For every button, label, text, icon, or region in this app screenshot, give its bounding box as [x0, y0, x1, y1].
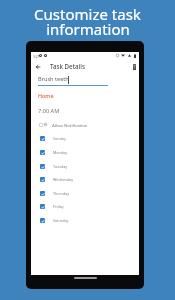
- button[interactable]: Monday: [40, 145, 139, 159]
- staticText: Sunday: [53, 136, 66, 141]
- button[interactable]: Back: [33, 62, 42, 71]
- staticText: information: [46, 19, 130, 39]
- staticText: Thursday: [53, 191, 70, 196]
- staticText: Tuesday: [53, 164, 68, 169]
- staticText: Allow Notification: [52, 122, 88, 128]
- button[interactable]: Thursday: [40, 186, 139, 200]
- button[interactable]: Home: [38, 92, 54, 99]
- button[interactable]: Delete: [130, 62, 139, 71]
- staticText: Monday: [53, 150, 68, 155]
- staticText: Saturday: [53, 218, 69, 223]
- button[interactable]: Sunday: [40, 131, 139, 145]
- staticText: Brush teeth: [38, 75, 69, 83]
- button[interactable]: Allow Notification: [31, 120, 139, 129]
- button[interactable]: Friday: [40, 199, 139, 213]
- staticText: 3:21: [33, 54, 40, 59]
- button[interactable]: Tuesday: [40, 159, 139, 173]
- button[interactable]: Wednesday: [40, 172, 139, 186]
- staticText: Task Details: [50, 62, 85, 70]
- staticText: Friday: [53, 204, 64, 209]
- button[interactable]: 7:00 AM: [38, 107, 60, 115]
- staticText: Customize task: [34, 4, 141, 24]
- button[interactable]: Saturday: [40, 213, 139, 227]
- staticText: Wednesday: [53, 177, 74, 182]
